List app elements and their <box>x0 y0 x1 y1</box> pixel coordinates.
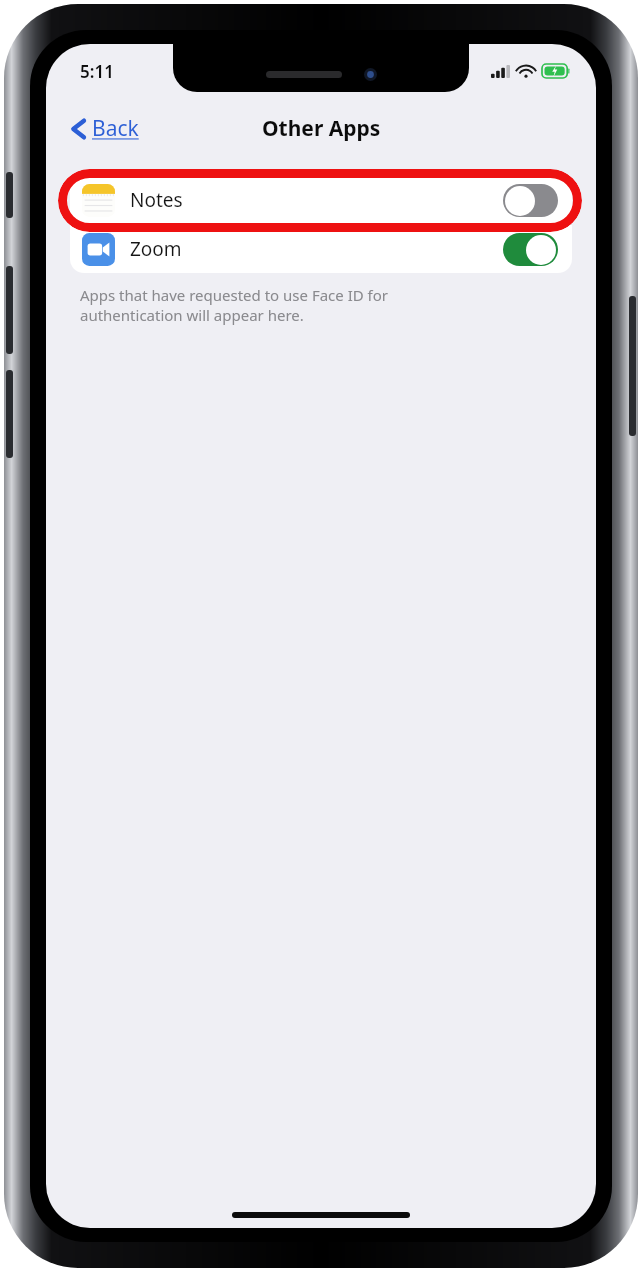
staticText: Zoom <box>130 236 182 262</box>
staticText: Notes <box>130 187 183 213</box>
button[interactable]: Notes <box>70 176 572 224</box>
staticText: 5:11 <box>80 60 114 83</box>
staticText: Other Apps <box>262 114 381 143</box>
button[interactable]: Notes Face ID toggle <box>503 184 558 217</box>
staticText: Back <box>92 114 139 143</box>
button[interactable]: Back <box>68 110 143 147</box>
staticText: Apps that have requested to use Face ID … <box>80 285 389 325</box>
button[interactable]: Zoom Face ID toggle <box>503 233 558 266</box>
button[interactable]: Zoom <box>70 225 572 273</box>
